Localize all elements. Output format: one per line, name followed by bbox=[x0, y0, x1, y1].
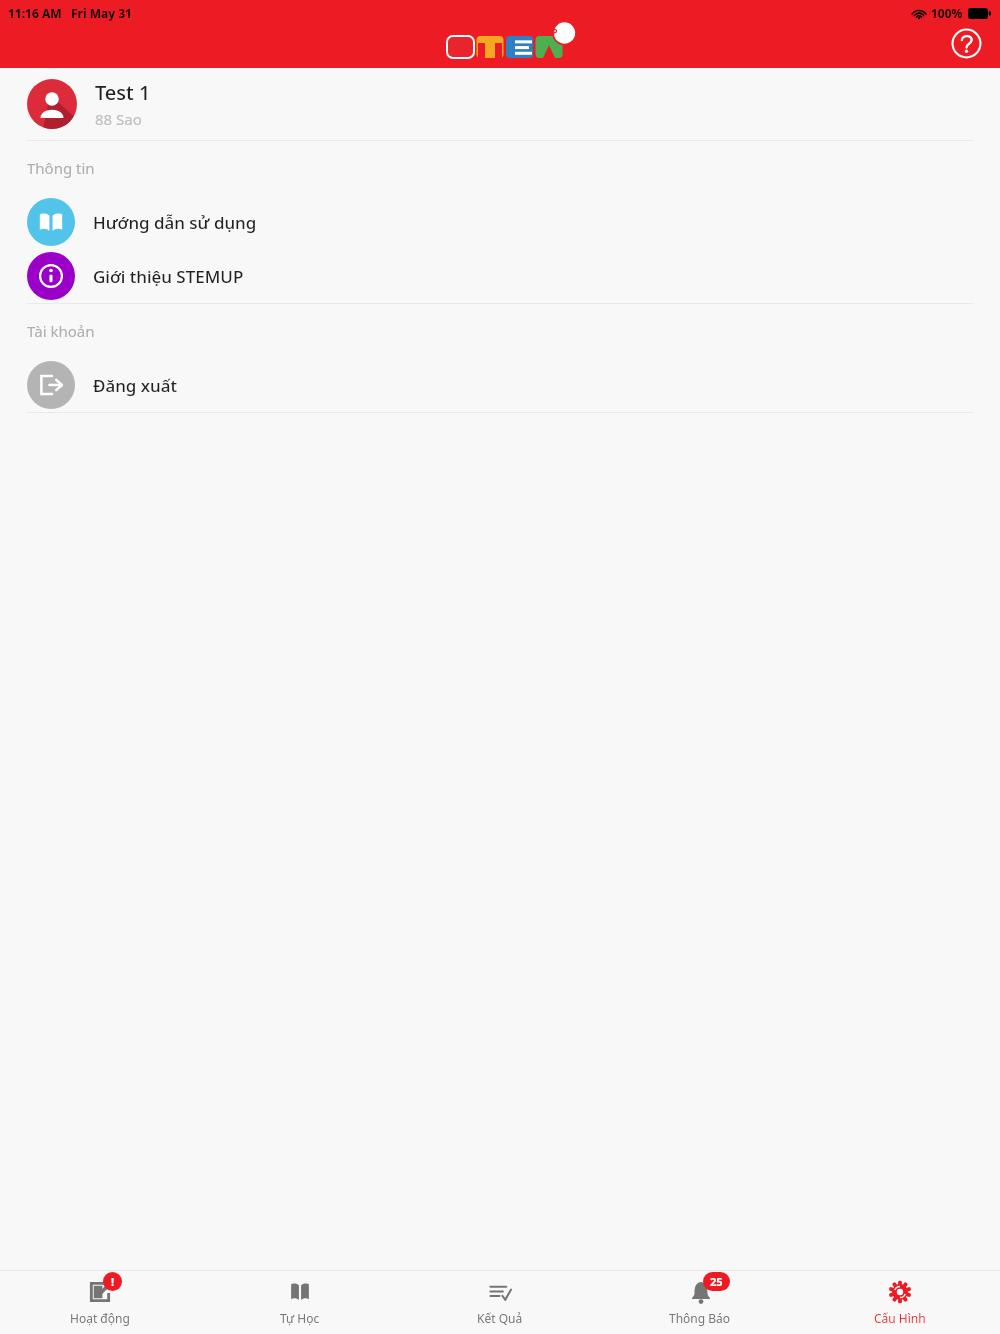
staticText: 25 bbox=[710, 1274, 723, 1289]
staticText: 88 Sao bbox=[95, 109, 142, 129]
staticText: Tài khoản bbox=[27, 321, 95, 341]
staticText: Thông tin bbox=[27, 158, 95, 178]
staticText: Cấu Hình bbox=[874, 1310, 926, 1326]
button[interactable]: ! bbox=[0, 1271, 200, 1334]
staticText: Đăng xuất bbox=[93, 374, 177, 397]
staticText: Test 1 bbox=[95, 79, 151, 106]
button[interactable]: Hướng dẫn sử dụng bbox=[0, 195, 1000, 249]
staticText: 100% bbox=[931, 5, 963, 21]
staticText: UP bbox=[546, 26, 558, 37]
button[interactable]: Cấu Hình bbox=[800, 1271, 1000, 1334]
button[interactable]: Tự Học bbox=[200, 1271, 400, 1334]
staticText: Tự Học bbox=[280, 1310, 320, 1326]
staticText: Kết Quả bbox=[477, 1310, 523, 1326]
button[interactable]: Help bbox=[945, 22, 987, 64]
staticText: Giới thiệu STEMUP bbox=[93, 265, 244, 288]
button[interactable]: Kết Quả bbox=[400, 1271, 600, 1334]
staticText: ! bbox=[111, 1274, 115, 1289]
button[interactable]: 25 bbox=[600, 1271, 800, 1334]
staticText: Hướng dẫn sử dụng bbox=[93, 211, 257, 234]
button[interactable]: Giới thiệu STEMUP bbox=[0, 249, 1000, 303]
staticText: Hoạt động bbox=[70, 1310, 130, 1326]
button[interactable]: Test 1 bbox=[0, 68, 1000, 140]
button[interactable]: Đăng xuất bbox=[0, 358, 1000, 412]
staticText: 11:16 AM bbox=[8, 5, 62, 21]
staticText: Fri May 31 bbox=[71, 5, 132, 21]
staticText: Thông Báo bbox=[669, 1310, 731, 1326]
